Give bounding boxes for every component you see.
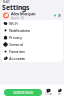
staticText: Apple ID (11, 16, 24, 20)
button[interactable]: Wi-Fi (1, 20, 63, 27)
button[interactable]: Notifications (1, 27, 63, 34)
button[interactable]: Privacy (1, 34, 63, 41)
staticText: Privacy (9, 35, 22, 40)
staticText: General (9, 42, 23, 47)
button[interactable]: Chats (44, 87, 53, 97)
staticText: Me (57, 92, 61, 96)
staticText: 9:41 (3, 0, 10, 4)
staticText: Wi-Fi (9, 21, 18, 26)
staticText: Alex Morgan (11, 11, 36, 16)
button[interactable]: Alex Morgan (0, 11, 64, 20)
staticText: Settings (2, 3, 29, 12)
button[interactable]: Favorites (1, 48, 63, 55)
staticText: CONTINUE (13, 90, 33, 95)
staticText: Notifications (9, 28, 30, 33)
button[interactable]: General (1, 41, 63, 48)
button[interactable]: Accounts (1, 55, 63, 62)
button[interactable]: CONTINUE (4, 89, 42, 96)
staticText: Favorites (9, 49, 25, 54)
staticText: Chats (45, 92, 52, 96)
button[interactable]: Me (55, 87, 64, 97)
staticText: Accounts (9, 56, 25, 61)
